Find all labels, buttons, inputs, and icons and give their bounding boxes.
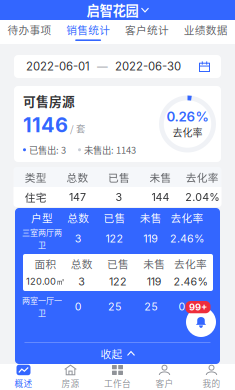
staticText: 面积 [35,256,57,271]
button[interactable]: 收起 [15,343,220,364]
staticText: 待办事项 [7,22,51,37]
staticText: 25 [108,300,121,313]
staticText: 三室两厅两 [22,226,62,238]
staticText: 启智花园 [86,0,138,20]
staticText: / 套 [70,121,85,135]
button[interactable]: 房源 [47,364,94,390]
staticText: 已售 [103,210,125,225]
staticText: 去化率 [186,169,219,185]
button[interactable]: 工作台 [94,364,141,390]
staticText: 0% [178,300,195,313]
staticText: 0 [75,300,82,313]
button[interactable]: 概述 [0,364,47,390]
button[interactable]: 启智花园 [0,0,235,20]
button[interactable]: 销售统计 [59,20,118,44]
staticText: 99+ [189,301,207,313]
button[interactable]: 客户 [141,364,188,390]
staticText: 120.00㎡ [26,276,65,287]
staticText: 3 [75,232,82,245]
staticText: 未售 [150,169,172,185]
button[interactable]: 2022-06-01 [14,55,221,78]
staticText: 122 [105,232,123,245]
staticText: 已售出: 3 [29,143,66,156]
staticText: 3 [78,275,85,288]
staticText: 户型 [31,210,53,225]
button[interactable]: 待办事项 [0,20,59,44]
staticText: 收起 [100,346,122,361]
staticText: 0.26% [166,109,208,125]
staticText: 房源 [61,377,79,389]
button[interactable]: 业绩数据 [176,20,235,44]
staticText: 总数 [67,210,89,225]
staticText: 122 [109,275,127,288]
staticText: 总数 [66,169,88,185]
staticText: 去化率 [172,125,202,139]
staticText: 销售统计 [66,22,110,37]
staticText: 2022-06-01 [26,60,90,73]
staticText: 客户统计 [125,22,169,37]
staticText: 2.46% [170,232,204,245]
staticText: 总数 [71,256,93,271]
staticText: 119 [143,232,158,245]
staticText: 未售出: 1143 [84,143,136,156]
staticText: 我的 [202,377,220,389]
button[interactable]: 客户统计 [117,20,176,44]
staticText: 2.04% [185,190,219,203]
staticText: 未售 [143,256,165,271]
staticText: 概述 [14,377,32,389]
staticText: 去化率 [174,256,207,271]
staticText: — [97,60,108,73]
staticText: 2.46% [173,275,207,288]
staticText: 业绩数据 [184,22,228,37]
staticText: 已售 [108,169,130,185]
staticText: 147 [69,190,86,203]
staticText: 可售房源 [23,91,75,110]
staticText: 住宅 [25,189,47,205]
staticText: 卫 [38,307,46,319]
staticText: 已售 [107,256,129,271]
staticText: 3 [115,190,122,203]
staticText: 25 [144,300,157,313]
staticText: 1146 [23,113,68,137]
staticText: 卫 [38,239,46,251]
staticText: 2022-06-30 [115,60,181,73]
staticText: 去化率 [170,210,203,225]
button[interactable]: 我的 [188,364,235,390]
staticText: 工作台 [104,377,131,389]
staticText: 客户 [155,377,173,389]
button[interactable]: 通知 [184,301,218,343]
staticText: 119 [147,275,162,288]
staticText: 类型 [25,169,47,185]
staticText: 两室一厅一 [22,294,62,306]
staticText: 未售 [140,210,162,225]
staticText: 144 [152,190,170,203]
